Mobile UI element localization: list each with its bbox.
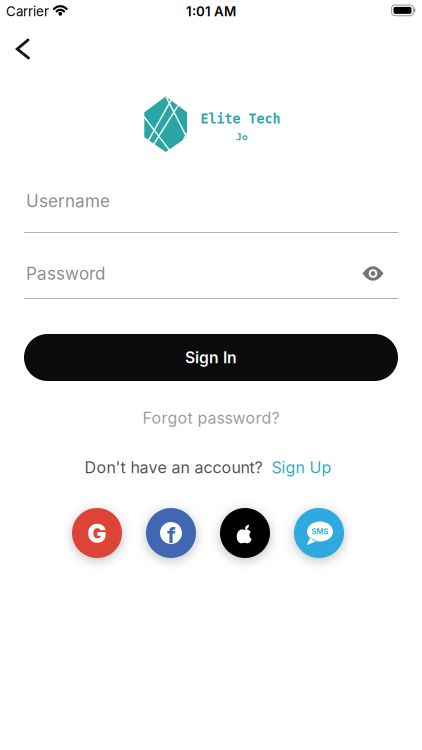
staticText: Forgot password? <box>142 408 279 428</box>
staticText: Username <box>26 191 110 211</box>
button[interactable]: Back <box>4 33 40 65</box>
staticText: G <box>87 518 106 549</box>
staticText: 1:01 AM <box>186 3 236 19</box>
button[interactable]: Sign In <box>24 334 398 381</box>
button[interactable]: Sign in with Facebook <box>146 508 196 558</box>
staticText: Don't have an account? <box>84 458 262 477</box>
button[interactable]: Sign in with Apple <box>220 508 270 558</box>
staticText: Elite Tech <box>200 111 280 126</box>
button[interactable]: Sign Up <box>271 458 331 477</box>
button[interactable]: Show password <box>358 258 388 288</box>
staticText: f <box>167 522 176 548</box>
staticText: SMS <box>311 527 328 536</box>
staticText: Sign In <box>185 348 237 367</box>
button[interactable]: Forgot password? <box>142 408 279 428</box>
staticText: Jo <box>236 132 248 142</box>
button[interactable]: Sign in with SMS <box>294 508 344 558</box>
button[interactable]: Sign in with Google <box>72 508 122 558</box>
staticText: Sign Up <box>271 458 331 477</box>
staticText: Password <box>26 263 105 284</box>
staticText: Carrier <box>6 3 49 19</box>
